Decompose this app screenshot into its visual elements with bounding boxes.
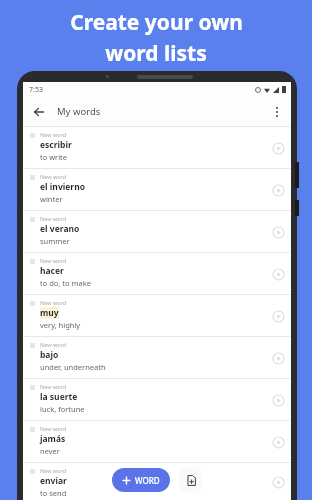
staticText: New word bbox=[40, 467, 67, 474]
staticText: word lists bbox=[105, 39, 207, 68]
staticText: New word bbox=[40, 299, 67, 306]
staticText: New word bbox=[40, 257, 67, 264]
staticText: to send bbox=[40, 488, 67, 498]
staticText: muy bbox=[40, 307, 59, 319]
staticText: 7:53 bbox=[29, 85, 43, 95]
staticText: under, underneath bbox=[40, 362, 106, 372]
button[interactable]: WORD bbox=[112, 468, 170, 492]
staticText: never bbox=[40, 446, 60, 456]
staticText: to write bbox=[40, 152, 68, 162]
button[interactable]: New word bbox=[23, 463, 291, 500]
button[interactable]: More options bbox=[266, 101, 288, 123]
button[interactable]: Play pronunciation bbox=[269, 433, 287, 451]
button[interactable]: Play pronunciation bbox=[269, 139, 287, 157]
button[interactable]: Play pronunciation bbox=[269, 265, 287, 283]
button[interactable]: Play pronunciation bbox=[269, 473, 287, 491]
staticText: el verano bbox=[40, 223, 80, 235]
staticText: hacer bbox=[40, 265, 64, 277]
staticText: New word bbox=[40, 215, 67, 222]
staticText: New word bbox=[40, 341, 67, 348]
staticText: very, highly bbox=[40, 320, 81, 330]
button[interactable]: Play pronunciation bbox=[269, 307, 287, 325]
button[interactable]: New word bbox=[23, 211, 291, 252]
staticText: summer bbox=[40, 236, 70, 246]
staticText: My words bbox=[57, 105, 101, 118]
button[interactable]: Play pronunciation bbox=[269, 223, 287, 241]
button[interactable]: Play pronunciation bbox=[269, 391, 287, 409]
staticText: New word bbox=[40, 173, 67, 180]
staticText: winter bbox=[40, 194, 63, 204]
staticText: el invierno bbox=[40, 181, 85, 193]
staticText: New word bbox=[40, 383, 67, 390]
button[interactable]: New word bbox=[23, 379, 291, 420]
staticText: bajo bbox=[40, 349, 59, 361]
button[interactable]: Import word list bbox=[179, 468, 203, 492]
staticText: New word bbox=[40, 425, 67, 432]
staticText: luck, fortune bbox=[40, 404, 85, 414]
button[interactable]: New word bbox=[23, 337, 291, 378]
button[interactable]: New word bbox=[23, 421, 291, 462]
staticText: jamás bbox=[40, 433, 66, 445]
staticText: WORD bbox=[135, 475, 160, 486]
button[interactable]: New word bbox=[23, 253, 291, 294]
button[interactable]: Play pronunciation bbox=[269, 181, 287, 199]
button[interactable]: Back bbox=[27, 100, 51, 124]
staticText: Create your own bbox=[70, 8, 243, 37]
button[interactable]: Play pronunciation bbox=[269, 349, 287, 367]
button[interactable]: New word bbox=[23, 169, 291, 210]
staticText: New word bbox=[40, 131, 67, 138]
staticText: la suerte bbox=[40, 391, 78, 403]
staticText: enviar bbox=[40, 475, 67, 487]
staticText: escribir bbox=[40, 139, 72, 151]
staticText: to do, to make bbox=[40, 278, 91, 288]
button[interactable]: New word bbox=[23, 295, 291, 336]
button[interactable]: New word bbox=[23, 127, 291, 168]
